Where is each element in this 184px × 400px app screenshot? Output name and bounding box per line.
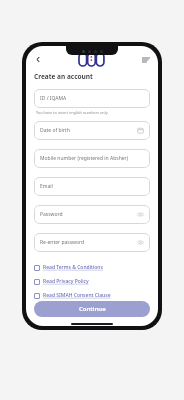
staticText: Mobile number (registered in Absher) [40,155,129,162]
staticText: Continue [79,305,106,313]
button[interactable]: Read Privacy Policy [34,276,150,287]
staticText: Email [40,183,53,190]
button[interactable]: Read Terms & Conditions [34,262,150,273]
staticText: Read Privacy Policy [43,278,89,285]
button[interactable]: Back [33,54,43,64]
button[interactable]: Date of birth [34,121,150,140]
other: Pick date [137,127,144,134]
staticText: You have to insert english numbers only [36,110,108,115]
button[interactable]: Re-enter password [34,233,150,252]
other: Show password [137,211,144,218]
staticText: ID / IQAMA [40,95,67,102]
button[interactable]: ID / IQAMA [34,89,150,108]
staticText: Read Terms & Conditions [43,264,103,271]
staticText: Date of birth [40,127,70,134]
other: Show password [137,239,144,246]
button[interactable]: Read SIMAH Consent Clause [34,290,150,301]
button[interactable]: Password [34,205,150,224]
staticText: Re-enter password [40,239,85,246]
staticText: Password [40,211,63,218]
button[interactable]: Menu [140,54,151,65]
staticText: Read SIMAH Consent Clause [43,292,111,299]
button[interactable]: Continue [34,301,150,317]
button[interactable]: Email [34,177,150,196]
button[interactable]: Mobile number (registered in Absher) [34,149,150,168]
staticText: Create an account [34,72,93,81]
